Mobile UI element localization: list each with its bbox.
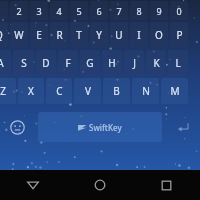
staticText: 9: [156, 5, 162, 17]
button[interactable]: E: [30, 22, 48, 48]
staticText: U: [115, 28, 123, 42]
staticText: W: [14, 28, 24, 42]
button[interactable]: U: [110, 22, 128, 48]
button[interactable]: T: [70, 22, 88, 48]
button[interactable]: Space: [38, 112, 162, 142]
staticText: C: [56, 84, 63, 98]
button[interactable]: O: [150, 22, 168, 48]
staticText: 7: [116, 5, 122, 17]
button[interactable]: Enter: [166, 110, 200, 144]
button[interactable]: Z: [0, 78, 16, 104]
button[interactable]: Home: [66, 170, 133, 200]
button[interactable]: 1: [0, 1, 8, 20]
button[interactable]: M: [161, 78, 188, 104]
staticText: V: [85, 84, 91, 98]
button[interactable]: R: [50, 22, 68, 48]
button[interactable]: 4: [50, 1, 68, 20]
staticText: 8: [136, 5, 142, 17]
staticText: 2: [16, 5, 22, 17]
button[interactable]: 9: [150, 1, 168, 20]
staticText: I: [137, 28, 141, 42]
button[interactable]: A: [0, 50, 11, 76]
staticText: K: [153, 56, 160, 70]
button[interactable]: 8: [130, 1, 148, 20]
staticText: D: [42, 56, 50, 70]
staticText: 5: [76, 5, 82, 17]
button[interactable]: 7: [110, 1, 128, 20]
button[interactable]: F: [58, 50, 78, 76]
button[interactable]: Q: [0, 22, 8, 48]
button[interactable]: Back: [0, 170, 66, 200]
button[interactable]: 0: [170, 1, 188, 20]
staticText: S: [21, 56, 27, 70]
button[interactable]: D: [36, 50, 56, 76]
button[interactable]: Recents: [133, 170, 200, 200]
staticText: H: [108, 56, 116, 70]
button[interactable]: 5: [70, 1, 88, 20]
staticText: P: [176, 28, 183, 42]
staticText: F: [65, 56, 71, 70]
staticText: G: [86, 56, 94, 70]
staticText: Z: [0, 84, 6, 98]
staticText: M: [170, 84, 180, 98]
button[interactable]: S: [13, 50, 34, 76]
staticText: N: [142, 84, 150, 98]
button[interactable]: N: [132, 78, 159, 104]
button[interactable]: 3: [30, 1, 48, 20]
staticText: E: [36, 28, 42, 42]
button[interactable]: Emoji: [0, 110, 34, 144]
button[interactable]: K: [146, 50, 166, 76]
button[interactable]: B: [103, 78, 130, 104]
staticText: Q: [0, 28, 3, 42]
staticText: O: [155, 28, 163, 42]
staticText: Y: [96, 28, 102, 42]
staticText: 0: [176, 5, 182, 17]
button[interactable]: 6: [90, 1, 108, 20]
staticText: 6: [96, 5, 102, 17]
staticText: 4: [56, 5, 62, 17]
button[interactable]: W: [10, 22, 28, 48]
staticText: T: [76, 28, 82, 42]
staticText: X: [28, 84, 34, 98]
button[interactable]: Y: [90, 22, 108, 48]
staticText: R: [56, 28, 63, 42]
button[interactable]: P: [170, 22, 188, 48]
button[interactable]: X: [18, 78, 44, 104]
button[interactable]: C: [46, 78, 72, 104]
button[interactable]: V: [74, 78, 101, 104]
staticText: A: [0, 56, 4, 70]
button[interactable]: G: [80, 50, 100, 76]
staticText: L: [175, 56, 181, 70]
button[interactable]: 2: [10, 1, 28, 20]
staticText: B: [113, 84, 120, 98]
button[interactable]: H: [102, 50, 122, 76]
button[interactable]: J: [124, 50, 144, 76]
button[interactable]: I: [130, 22, 148, 48]
staticText: 3: [36, 5, 42, 17]
button[interactable]: L: [168, 50, 188, 76]
staticText: SwiftKey: [89, 122, 122, 133]
staticText: J: [133, 56, 136, 70]
